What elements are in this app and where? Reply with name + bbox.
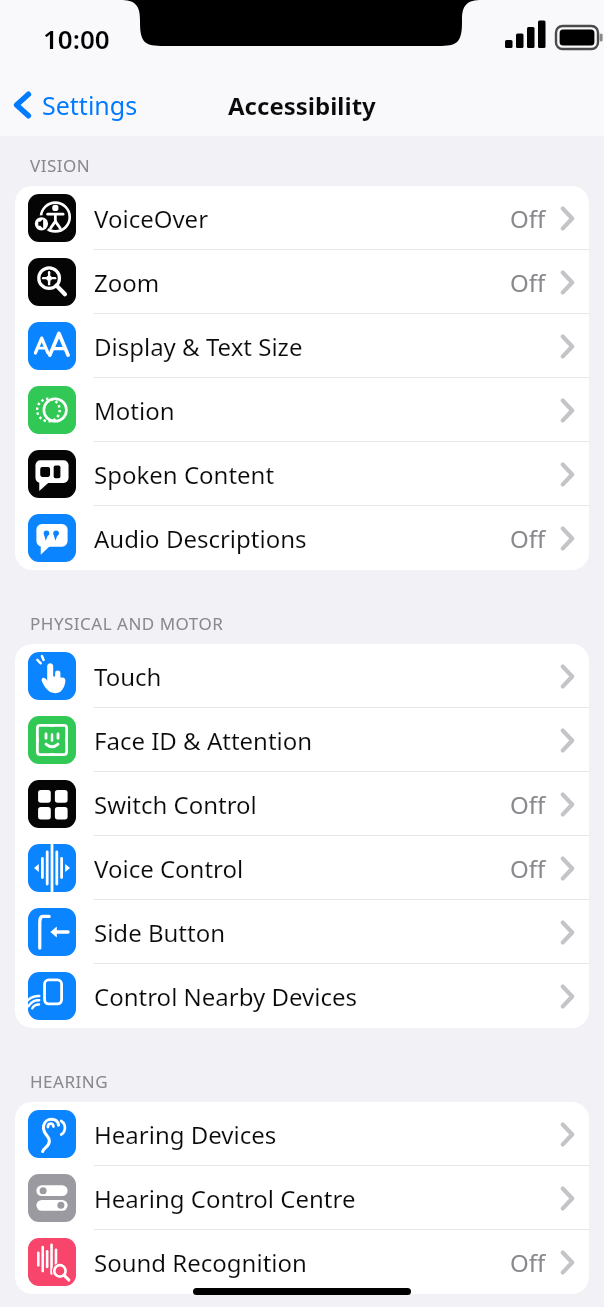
- other: Open Motion: [561, 399, 574, 422]
- staticText: Off: [510, 202, 546, 235]
- staticText: Hearing Control Centre: [94, 1182, 356, 1215]
- other: Open Face ID & Attention: [561, 729, 574, 752]
- button[interactable]: Side Button: [15, 900, 589, 964]
- staticText: Off: [510, 788, 546, 821]
- staticText: Control Nearby Devices: [94, 980, 357, 1013]
- staticText: VISION: [30, 154, 91, 177]
- other: Open VoiceOver: [561, 207, 574, 230]
- other: Open Display & Text Size: [561, 335, 574, 358]
- staticText: Side Button: [94, 916, 226, 949]
- other: Open Audio Descriptions: [561, 527, 574, 550]
- button[interactable]: Spoken Content: [15, 442, 589, 506]
- other: Open Switch Control: [561, 793, 574, 816]
- other: Open Hearing Control Centre: [561, 1187, 574, 1210]
- other: Open Control Nearby Devices: [561, 985, 574, 1008]
- staticText: Zoom: [94, 266, 160, 299]
- staticText: VoiceOver: [94, 202, 209, 235]
- button[interactable]: Control Nearby Devices: [15, 964, 589, 1028]
- staticText: Off: [510, 266, 546, 299]
- button[interactable]: Display & Text Size: [15, 314, 589, 378]
- button[interactable]: Face ID & Attention: [15, 708, 589, 772]
- staticText: Off: [510, 522, 546, 555]
- staticText: 10:00: [43, 21, 110, 56]
- staticText: Motion: [94, 394, 175, 427]
- other: Open Hearing Devices: [561, 1123, 574, 1146]
- staticText: Voice Control: [94, 852, 244, 885]
- staticText: Accessibility: [228, 89, 376, 122]
- other: Open Zoom: [561, 271, 574, 294]
- other: Open Side Button: [561, 921, 574, 944]
- staticText: Sound Recognition: [94, 1246, 307, 1279]
- staticText: Spoken Content: [94, 458, 275, 491]
- staticText: HEARING: [30, 1070, 109, 1093]
- other: Open Touch: [561, 665, 574, 688]
- staticText: Audio Descriptions: [94, 522, 307, 555]
- staticText: Off: [510, 1246, 546, 1279]
- button[interactable]: Audio Descriptions: [15, 506, 589, 570]
- other: Open Spoken Content: [561, 463, 574, 486]
- button[interactable]: Motion: [15, 378, 589, 442]
- button[interactable]: Touch: [15, 644, 589, 708]
- staticText: Face ID & Attention: [94, 724, 313, 757]
- other: Open Sound Recognition: [561, 1251, 574, 1274]
- staticText: Settings: [42, 88, 138, 122]
- button[interactable]: Sound Recognition: [15, 1230, 589, 1294]
- button[interactable]: Hearing Control Centre: [15, 1166, 589, 1230]
- button[interactable]: Switch Control: [15, 772, 589, 836]
- staticText: Switch Control: [94, 788, 257, 821]
- staticText: Touch: [94, 660, 162, 693]
- button[interactable]: VoiceOver: [15, 186, 589, 250]
- staticText: Display & Text Size: [94, 330, 303, 363]
- other: Open Voice Control: [561, 857, 574, 880]
- button[interactable]: Voice Control: [15, 836, 589, 900]
- staticText: PHYSICAL AND MOTOR: [30, 612, 224, 635]
- staticText: Hearing Devices: [94, 1118, 277, 1151]
- staticText: Off: [510, 852, 546, 885]
- button[interactable]: Settings: [0, 82, 150, 128]
- button[interactable]: Zoom: [15, 250, 589, 314]
- button[interactable]: Hearing Devices: [15, 1102, 589, 1166]
